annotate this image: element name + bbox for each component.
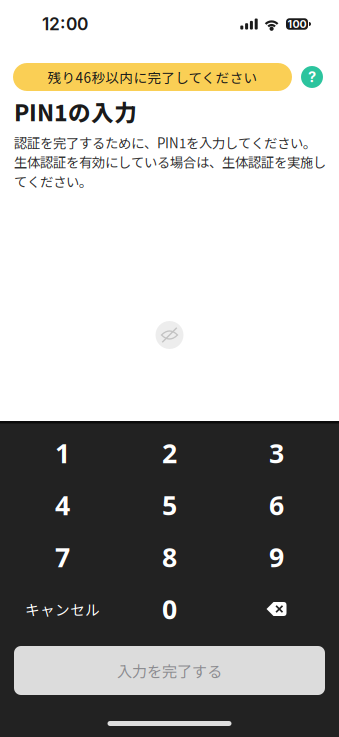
staticText: 認証を完了するために、PIN1を入力してください。生体認証を有効にしている場合は… bbox=[14, 133, 326, 191]
button[interactable]: Help bbox=[301, 66, 323, 88]
button[interactable]: 5 bbox=[116, 479, 223, 531]
staticText: 100 bbox=[287, 17, 306, 30]
staticText: 入力を完了する bbox=[117, 659, 222, 681]
staticText: 6 bbox=[269, 487, 284, 523]
staticText: キャンセル bbox=[25, 598, 100, 620]
staticText: PIN1の入力 bbox=[14, 95, 137, 128]
staticText: 2 bbox=[162, 435, 177, 471]
staticText: 12:00 bbox=[42, 13, 88, 34]
staticText: 3 bbox=[269, 435, 284, 471]
button[interactable]: 9 bbox=[223, 531, 330, 583]
staticText: 1 bbox=[55, 435, 70, 471]
button[interactable]: 7 bbox=[9, 531, 116, 583]
staticText: 0 bbox=[162, 591, 177, 627]
button[interactable]: 2 bbox=[116, 427, 223, 479]
button[interactable]: Delete bbox=[223, 583, 330, 635]
staticText: 4 bbox=[55, 487, 70, 523]
staticText: 5 bbox=[162, 487, 177, 523]
button[interactable]: 0 bbox=[116, 583, 223, 635]
button[interactable]: Show PIN bbox=[155, 321, 183, 349]
button[interactable]: 4 bbox=[9, 479, 116, 531]
button[interactable]: 入力を完了する bbox=[14, 646, 325, 695]
button[interactable]: キャンセル bbox=[9, 583, 116, 635]
button[interactable]: 6 bbox=[223, 479, 330, 531]
button[interactable]: 1 bbox=[9, 427, 116, 479]
staticText: 9 bbox=[269, 539, 284, 575]
staticText: 残り46秒以内に完了してください bbox=[47, 67, 257, 87]
button[interactable]: 8 bbox=[116, 531, 223, 583]
button[interactable]: 3 bbox=[223, 427, 330, 479]
staticText: ? bbox=[308, 68, 316, 86]
staticText: 8 bbox=[162, 539, 177, 575]
staticText: 7 bbox=[55, 539, 70, 575]
